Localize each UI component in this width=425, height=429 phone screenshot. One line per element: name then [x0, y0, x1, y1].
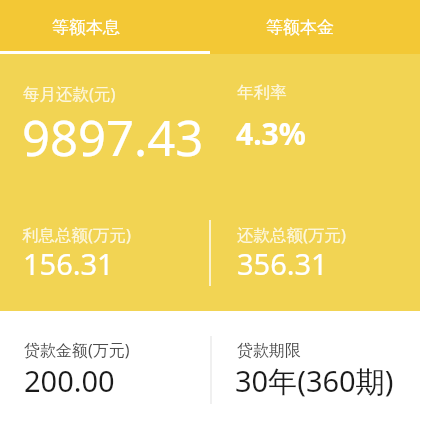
staticText: 贷款金额(万元): [24, 339, 130, 361]
staticText: 200.00: [24, 361, 115, 400]
staticText: 356.31: [237, 244, 328, 283]
button[interactable]: 贷款金额(万元): [0, 311, 210, 429]
staticText: 等额本金: [266, 17, 334, 38]
button[interactable]: 贷款期限: [210, 311, 425, 429]
staticText: 30年(360期): [235, 361, 394, 401]
staticText: 等额本息: [52, 17, 120, 38]
button[interactable]: 等额本息: [0, 0, 210, 54]
staticText: 4.3%: [236, 113, 306, 154]
staticText: 年利率: [237, 82, 287, 103]
staticText: 每月还款(元): [23, 82, 116, 105]
button[interactable]: 等额本金: [210, 0, 420, 54]
staticText: 贷款期限: [237, 341, 301, 361]
staticText: 利息总额(万元): [22, 223, 131, 246]
staticText: 9897.43: [22, 104, 204, 171]
staticText: 还款总额(万元): [237, 223, 346, 246]
staticText: 156.31: [23, 244, 114, 283]
